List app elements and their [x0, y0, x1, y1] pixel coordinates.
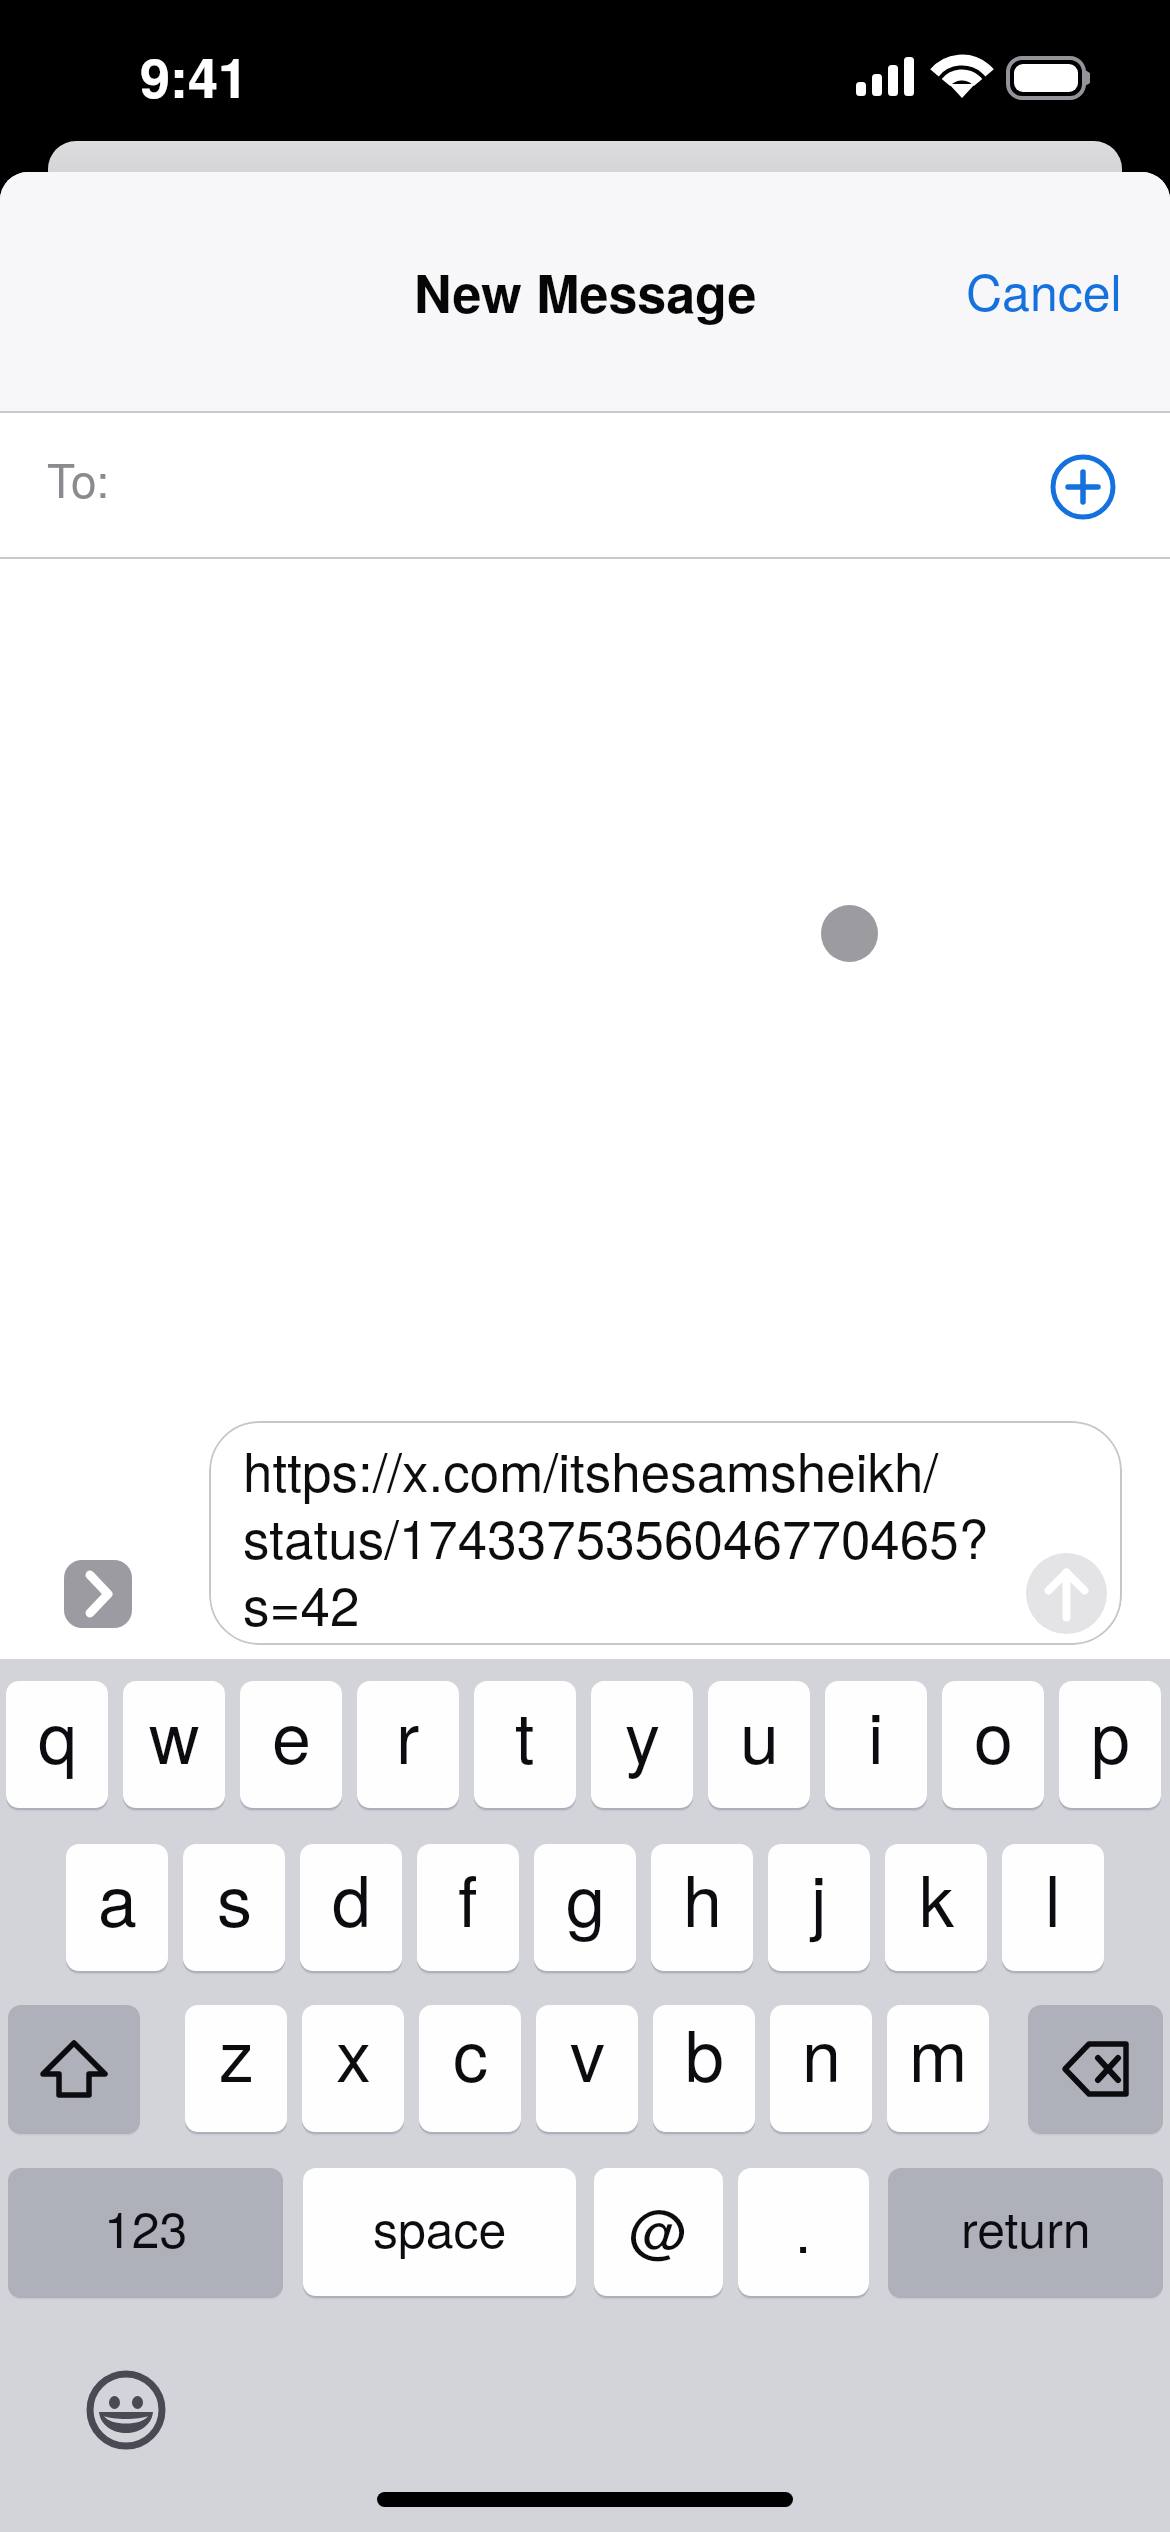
staticText: x — [336, 2005, 371, 2102]
button[interactable]: o — [942, 1681, 1044, 1808]
button[interactable]: f — [417, 1844, 519, 1971]
staticText: o — [974, 1684, 1013, 1784]
button[interactable]: r — [357, 1681, 459, 1808]
button[interactable]: h — [651, 1844, 753, 1971]
staticText: 9:41 — [140, 37, 249, 114]
button[interactable]: c — [419, 2005, 521, 2132]
button[interactable]: t — [474, 1681, 576, 1808]
button[interactable]: Add contact — [1047, 451, 1119, 523]
button[interactable]: s — [183, 1844, 285, 1971]
staticText: New Message — [414, 254, 757, 328]
button[interactable]: q — [6, 1681, 108, 1808]
staticText: y — [625, 1684, 660, 1784]
button[interactable]: l — [1002, 1844, 1104, 1971]
button[interactable] — [8, 2005, 140, 2132]
staticText: d — [332, 1847, 371, 1947]
staticText: q — [38, 1684, 77, 1784]
button[interactable]: To: — [0, 413, 1170, 559]
staticText: p — [1091, 1684, 1130, 1784]
button[interactable]: space — [303, 2168, 576, 2296]
button[interactable]: e — [240, 1681, 342, 1808]
button[interactable]: return — [888, 2168, 1163, 2296]
button[interactable]: Emoji keyboard — [87, 2371, 165, 2449]
staticText: u — [740, 1684, 779, 1784]
staticText: j — [811, 1847, 827, 1947]
staticText: t — [515, 1684, 535, 1784]
staticText: v — [570, 2005, 605, 2102]
other: Backspace — [1028, 2005, 1163, 2136]
staticText: 123 — [104, 2191, 188, 2263]
staticText: @ — [629, 2186, 688, 2269]
button[interactable]: n — [770, 2005, 872, 2132]
staticText: w — [149, 1684, 200, 1784]
staticText: e — [272, 1684, 311, 1784]
button[interactable]: Send — [1026, 1553, 1107, 1634]
button[interactable] — [1028, 2005, 1163, 2132]
staticText: l — [1045, 1847, 1061, 1947]
staticText: . — [795, 2186, 812, 2269]
button[interactable]: u — [708, 1681, 810, 1808]
staticText: To: — [47, 445, 110, 511]
button[interactable]: g — [534, 1844, 636, 1971]
button[interactable]: b — [653, 2005, 755, 2132]
button[interactable]: a — [66, 1844, 168, 1971]
other: Shift — [8, 2005, 140, 2136]
button[interactable]: k — [885, 1844, 987, 1971]
button[interactable]: w — [123, 1681, 225, 1808]
staticText: h — [683, 1847, 722, 1947]
button[interactable]: x — [302, 2005, 404, 2132]
staticText: a — [98, 1847, 137, 1947]
staticText: return — [961, 2191, 1091, 2263]
staticText: Cancel — [966, 254, 1122, 326]
button[interactable]: Cancel — [1014, 254, 1170, 326]
staticText: s — [217, 1847, 252, 1947]
staticText: i — [868, 1684, 884, 1784]
button[interactable]: v — [536, 2005, 638, 2132]
button[interactable]: More apps — [64, 1560, 132, 1628]
staticText: g — [566, 1847, 605, 1947]
button[interactable]: @ — [594, 2168, 723, 2296]
staticText: z — [219, 2005, 254, 2102]
staticText: f — [458, 1847, 478, 1947]
button[interactable]: j — [768, 1844, 870, 1971]
staticText: https://x.com/itshesamsheikh/ status/174… — [243, 1431, 989, 1641]
button[interactable]: y — [591, 1681, 693, 1808]
staticText: k — [919, 1847, 954, 1947]
staticText: n — [802, 2005, 841, 2102]
staticText: b — [685, 2005, 724, 2102]
button[interactable]: m — [887, 2005, 989, 2132]
staticText: space — [373, 2191, 507, 2263]
staticText: r — [396, 1684, 420, 1784]
staticText: c — [453, 2005, 488, 2102]
button[interactable]: i — [825, 1681, 927, 1808]
staticText: m — [909, 2005, 968, 2102]
button[interactable]: 123 — [8, 2168, 283, 2296]
button[interactable]: d — [300, 1844, 402, 1971]
button[interactable]: p — [1059, 1681, 1161, 1808]
button[interactable]: z — [185, 2005, 287, 2132]
button[interactable]: . — [738, 2168, 869, 2296]
